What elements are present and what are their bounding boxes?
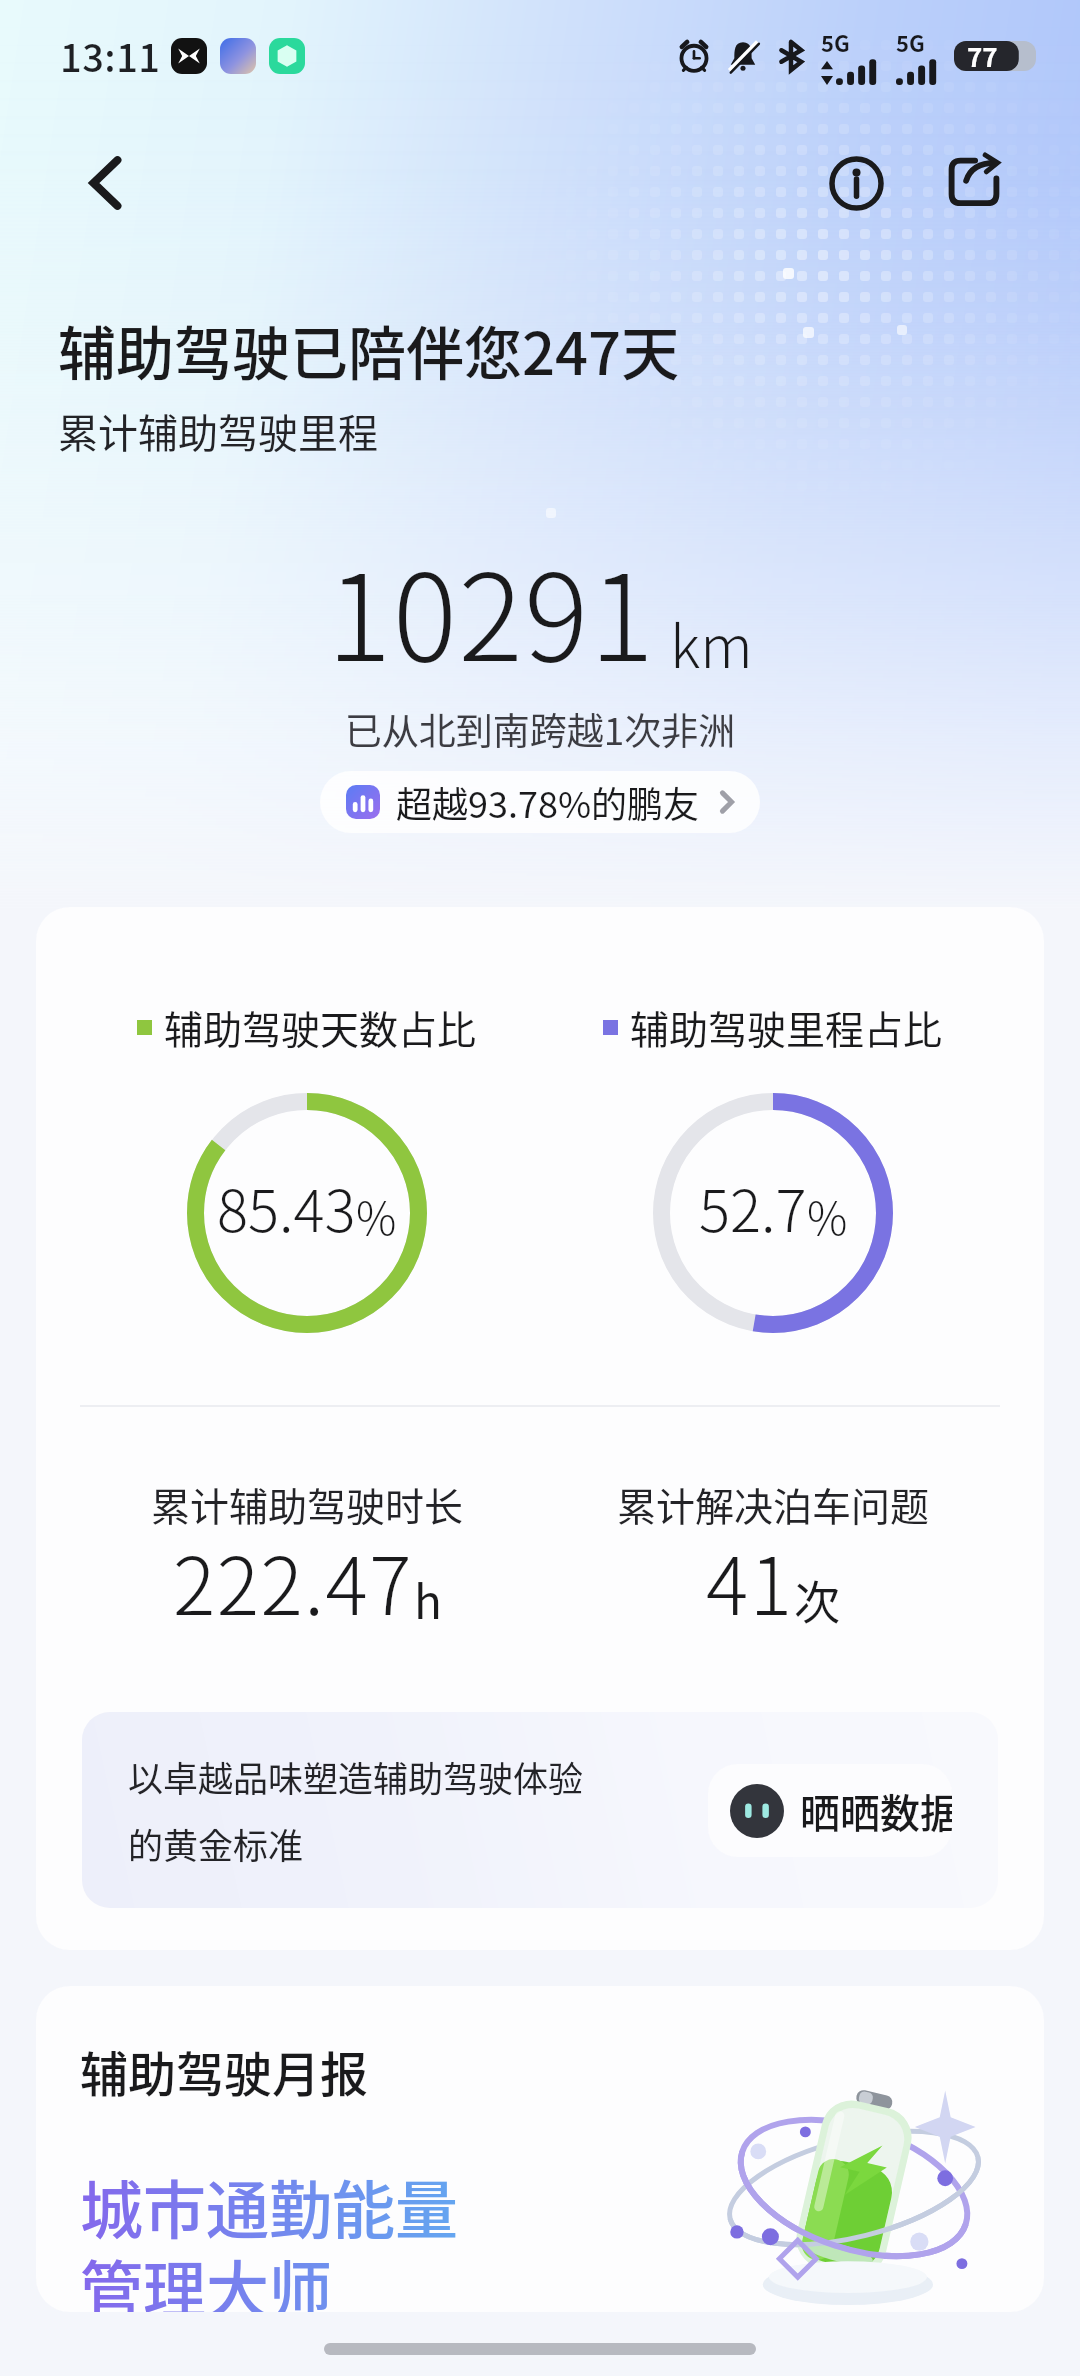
staticText: 5G [896,26,925,58]
button[interactable]: 辅助驾驶天数占比 [36,907,1044,1950]
staticText: % [807,1183,848,1248]
staticText: km [670,601,753,685]
staticText: 已从北到南跨越1次非洲 [0,702,1080,756]
staticText: 的黄金标准 [128,1818,304,1869]
staticText: 5G [821,26,850,58]
staticText: h [414,1566,442,1633]
staticText: 超越93.78%的鹏友 [396,776,700,828]
staticText: 10291 [327,522,656,696]
staticText: % [356,1183,397,1248]
staticText: 城市通勤能量 管理大师 [80,2160,458,2312]
staticText: 辅助驾驶月报 [80,2036,369,2106]
staticText: 次 [794,1566,840,1633]
button[interactable]: Info [810,137,902,229]
staticText: 222.47 [173,1523,414,1637]
button[interactable]: 超越93.78%的鹏友 [320,771,760,833]
staticText: 85.43 [217,1165,356,1249]
staticText: 13:11 [60,28,161,83]
staticText: 辅助驾驶已陪伴您247天 [58,308,680,392]
button[interactable]: Share [928,137,1020,229]
staticText: 累计辅助驾驶时长 [151,1476,464,1532]
staticText: 52.7 [699,1165,807,1249]
button[interactable]: 晒晒数据 [708,1764,952,1857]
button[interactable]: Back [58,135,154,231]
staticText: 晒晒数据 [800,1782,952,1840]
staticText: 77 [967,37,998,75]
staticText: 41 [706,1523,794,1637]
staticText: 累计辅助驾驶里程 [58,402,378,460]
staticText: 辅助驾驶里程占比 [630,999,943,1055]
staticText: 以卓越品味塑造辅助驾驶体验 [128,1751,584,1802]
button[interactable]: 辅助驾驶月报 [36,1986,1044,2312]
staticText: 辅助驾驶天数占比 [164,999,477,1055]
staticText: 累计解决泊车问题 [617,1476,930,1532]
